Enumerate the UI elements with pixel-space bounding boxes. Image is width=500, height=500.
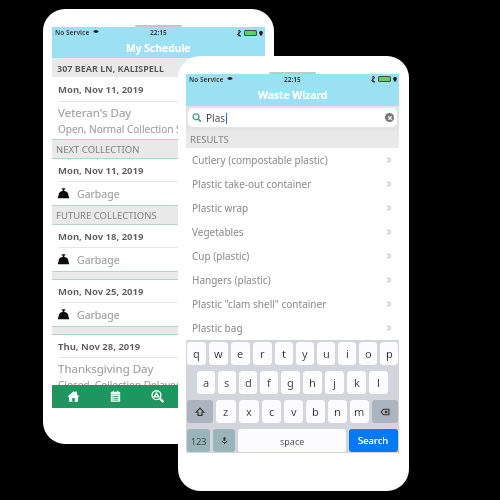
staticText: r bbox=[260, 346, 265, 361]
staticText: v bbox=[291, 404, 297, 419]
staticText: Plastic bag bbox=[192, 321, 243, 335]
staticText: o bbox=[365, 346, 372, 361]
staticText: FUTURE COLLECTIONS bbox=[56, 209, 157, 222]
button[interactable]: n bbox=[328, 400, 347, 423]
staticText: Cup (plastic) bbox=[192, 249, 250, 263]
button[interactable]: u bbox=[317, 342, 335, 365]
button[interactable]: j bbox=[325, 371, 344, 394]
button[interactable]: Mon, Nov 25, 2019 bbox=[52, 280, 265, 302]
staticText: Mon, Nov 25, 2019 bbox=[58, 285, 144, 298]
staticText: Mon, Nov 11, 2019 bbox=[58, 164, 144, 177]
staticText: Plastic wrap bbox=[192, 201, 249, 215]
button[interactable]: x bbox=[239, 400, 259, 423]
button[interactable]: Reminders bbox=[179, 385, 222, 408]
button[interactable]: s bbox=[218, 371, 236, 394]
button[interactable]: backspace bbox=[372, 400, 398, 423]
staticText: No Service bbox=[189, 75, 224, 84]
button[interactable]: Search bbox=[349, 429, 398, 452]
staticText: Hangers (plastic) bbox=[192, 273, 271, 287]
button[interactable]: w bbox=[209, 342, 228, 365]
button[interactable]: Garbage bbox=[52, 303, 265, 326]
button[interactable]: Plas bbox=[188, 108, 397, 127]
staticText: Veteran's Day bbox=[58, 105, 132, 121]
button[interactable]: t bbox=[275, 342, 293, 365]
button[interactable]: Mon, Nov 18, 2019 bbox=[52, 225, 265, 247]
staticText: x bbox=[246, 404, 252, 419]
button[interactable]: space bbox=[238, 429, 346, 452]
button[interactable]: Cup (plastic) bbox=[186, 244, 399, 268]
button[interactable]: r bbox=[253, 342, 272, 365]
button[interactable]: Schedule bbox=[94, 385, 136, 408]
button[interactable]: c bbox=[262, 400, 281, 423]
button[interactable]: l bbox=[369, 371, 388, 394]
staticText: c bbox=[269, 404, 275, 419]
button[interactable]: d bbox=[239, 371, 257, 394]
staticText: Mon, Nov 11, 2019 bbox=[58, 83, 144, 96]
staticText: 22:15 bbox=[150, 28, 167, 37]
button[interactable]: Hangers (plastic) bbox=[186, 268, 399, 292]
button[interactable]: i bbox=[338, 342, 356, 365]
button[interactable]: k bbox=[347, 371, 366, 394]
button[interactable]: h bbox=[303, 371, 322, 394]
button[interactable]: More bbox=[222, 385, 265, 408]
staticText: RESULTS bbox=[190, 133, 229, 146]
staticText: d bbox=[245, 375, 252, 390]
button[interactable]: q bbox=[187, 342, 206, 365]
staticText: Garbage bbox=[77, 308, 120, 322]
button[interactable]: Cutlery (compostable plastic) bbox=[186, 148, 399, 172]
staticText: Plastic "clam shell" container bbox=[192, 297, 327, 311]
button[interactable]: y bbox=[296, 342, 314, 365]
staticText: e bbox=[237, 346, 244, 361]
staticText: n bbox=[334, 404, 341, 419]
staticText: 123 bbox=[191, 435, 207, 447]
button[interactable]: Plastic bag bbox=[186, 316, 399, 340]
button[interactable]: p bbox=[380, 342, 398, 365]
staticText: i bbox=[346, 346, 349, 361]
staticText: My Schedule bbox=[126, 41, 191, 55]
staticText: t bbox=[282, 346, 286, 361]
staticText: Cutlery (compostable plastic) bbox=[192, 153, 328, 167]
button[interactable]: Home bbox=[52, 385, 94, 408]
button[interactable]: Mon, Nov 11, 2019 bbox=[52, 77, 265, 101]
staticText: 307 BEAR LN, KALISPELL bbox=[57, 62, 164, 74]
staticText: Thanksgiving Day bbox=[58, 361, 154, 377]
button[interactable]: z bbox=[216, 400, 236, 423]
button[interactable]: b bbox=[306, 400, 325, 423]
button[interactable]: v bbox=[284, 400, 303, 423]
staticText: No Service bbox=[55, 28, 90, 37]
staticText: space bbox=[280, 435, 305, 447]
staticText: z bbox=[223, 404, 229, 419]
button[interactable]: shift bbox=[187, 400, 213, 423]
button[interactable]: o bbox=[359, 342, 377, 365]
staticText: y bbox=[302, 346, 308, 361]
button[interactable]: Garbage bbox=[52, 182, 265, 205]
staticText: Open, Normal Collection Sc bbox=[58, 122, 187, 136]
staticText: w bbox=[214, 346, 223, 361]
button[interactable]: Garbage bbox=[52, 248, 265, 271]
staticText: b bbox=[312, 404, 319, 419]
button[interactable]: Waste Wizard bbox=[136, 385, 179, 408]
button[interactable]: Clear search bbox=[385, 113, 394, 122]
button[interactable]: Thu, Nov 28, 2019 bbox=[52, 335, 265, 357]
button[interactable]: g bbox=[281, 371, 300, 394]
button[interactable]: Plastic "clam shell" container bbox=[186, 292, 399, 316]
button[interactable]: 123 bbox=[187, 429, 210, 452]
button[interactable]: Microphone bbox=[213, 429, 235, 452]
button[interactable]: Vegetables bbox=[186, 220, 399, 244]
staticText: 22:15 bbox=[284, 75, 301, 84]
button[interactable]: e bbox=[231, 342, 250, 365]
staticText: Plas bbox=[206, 111, 226, 125]
staticText: s bbox=[224, 375, 230, 390]
staticText: Plastic take-out container bbox=[192, 177, 312, 191]
button[interactable]: Plastic take-out container bbox=[186, 172, 399, 196]
button[interactable]: m bbox=[350, 400, 369, 423]
staticText: l bbox=[377, 375, 380, 390]
staticText: a bbox=[203, 375, 210, 390]
staticText: Vegetables bbox=[192, 225, 244, 239]
button[interactable]: f bbox=[260, 371, 278, 394]
staticText: u bbox=[323, 346, 330, 361]
button[interactable]: a bbox=[197, 371, 215, 394]
button[interactable]: Plastic wrap bbox=[186, 196, 399, 220]
button[interactable]: Mon, Nov 11, 2019 bbox=[52, 159, 265, 181]
staticText: j bbox=[333, 375, 336, 390]
